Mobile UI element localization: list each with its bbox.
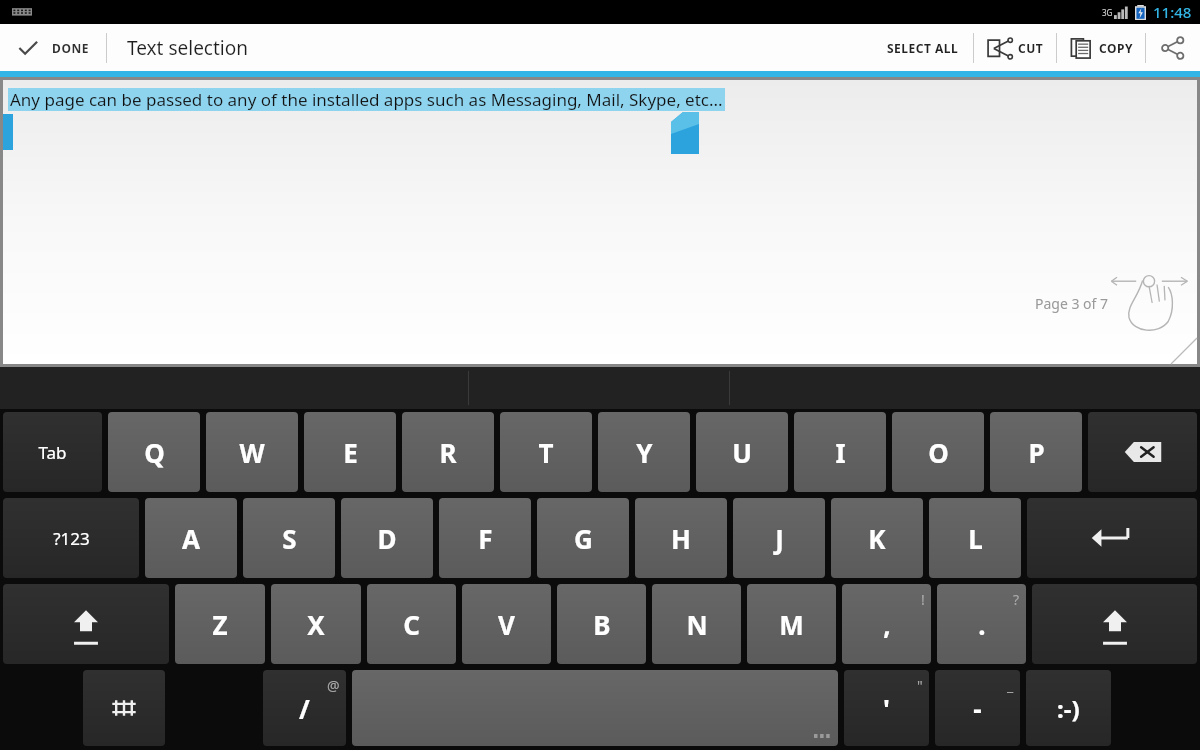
staticText: J (775, 521, 784, 556)
button[interactable]: Q (108, 412, 200, 492)
button[interactable]: I (794, 412, 886, 492)
staticText: W (239, 435, 265, 470)
button[interactable]: . (937, 584, 1026, 664)
button[interactable]: Tab (3, 412, 102, 492)
button[interactable]: T (500, 412, 592, 492)
button[interactable]: Backspace (1088, 412, 1197, 492)
staticText: K (868, 521, 886, 556)
staticText: / (299, 691, 310, 726)
staticText: DONE (52, 40, 90, 56)
button[interactable]: smiley (1026, 670, 1111, 746)
staticText: ' (883, 691, 890, 726)
staticText: - (973, 691, 982, 726)
staticText: D (377, 521, 397, 556)
button[interactable]: Shift (1032, 584, 1197, 664)
staticText: CUT (1018, 40, 1044, 56)
button[interactable]: K (831, 498, 923, 578)
button[interactable]: Keyboard settings (83, 670, 165, 746)
button[interactable]: Share (1146, 25, 1200, 71)
button[interactable]: , (842, 584, 931, 664)
staticText: ?123 (53, 527, 90, 550)
staticText: A (182, 521, 200, 556)
staticText: Y (636, 435, 653, 470)
button[interactable]: V (462, 584, 551, 664)
staticText: " (917, 676, 923, 695)
staticText: @ (327, 676, 340, 695)
button[interactable]: COPY (1057, 28, 1145, 68)
staticText: L (968, 521, 983, 556)
staticText: Tab (38, 441, 67, 464)
staticText: O (928, 435, 949, 470)
staticText: R (439, 435, 457, 470)
button[interactable]: S (243, 498, 335, 578)
button[interactable]: B (557, 584, 646, 664)
staticText: V (498, 607, 515, 642)
staticText: H (671, 521, 691, 556)
staticText: 11:48 (1153, 2, 1192, 22)
staticText: B (593, 607, 611, 642)
button[interactable]: / (263, 670, 346, 746)
button[interactable]: G (537, 498, 629, 578)
staticText: 3G (1102, 7, 1113, 18)
staticText: F (478, 521, 493, 556)
button[interactable]: P (990, 412, 1082, 492)
button[interactable]: L (929, 498, 1021, 578)
button[interactable]: E (304, 412, 396, 492)
button[interactable]: C (367, 584, 456, 664)
staticText: Z (212, 607, 228, 642)
button[interactable]: H (635, 498, 727, 578)
button[interactable]: F (439, 498, 531, 578)
staticText: , (883, 607, 891, 642)
staticText: G (574, 521, 593, 556)
staticText: U (732, 435, 752, 470)
button[interactable]: R (402, 412, 494, 492)
button[interactable]: CUT (974, 27, 1056, 69)
staticText: Any page can be passed to any of the ins… (10, 88, 723, 111)
button[interactable]: Space (352, 670, 838, 746)
button[interactable]: ?123 (3, 498, 139, 578)
button[interactable]: X (271, 584, 361, 664)
staticText: Q (144, 435, 165, 470)
button[interactable]: DONE (0, 26, 106, 70)
staticText: S (282, 521, 297, 556)
staticText: Text selection (127, 35, 248, 61)
staticText: I (835, 435, 846, 470)
staticText: :-) (1057, 692, 1080, 725)
staticText: P (1028, 435, 1045, 470)
button[interactable]: J (733, 498, 825, 578)
staticText: M (779, 607, 804, 642)
staticText: SELECT ALL (887, 40, 959, 56)
button[interactable]: W (206, 412, 298, 492)
staticText: N (686, 607, 708, 642)
button[interactable]: O (892, 412, 984, 492)
button[interactable]: Z (175, 584, 265, 664)
staticText: . (978, 607, 986, 642)
staticText: _ (1007, 676, 1014, 695)
button[interactable]: SELECT ALL (873, 28, 973, 68)
button[interactable]: ' (844, 670, 929, 746)
staticText: T (538, 435, 554, 470)
staticText: C (403, 607, 420, 642)
button[interactable]: - (935, 670, 1020, 746)
button[interactable]: Shift (3, 584, 169, 664)
button[interactable]: Y (598, 412, 690, 492)
staticText: E (343, 435, 358, 470)
staticText: COPY (1099, 40, 1133, 56)
button[interactable]: A (145, 498, 237, 578)
button[interactable]: Enter (1027, 498, 1197, 578)
staticText: X (307, 607, 325, 642)
button[interactable]: M (747, 584, 836, 664)
button[interactable]: U (696, 412, 788, 492)
staticText: ! (921, 590, 925, 609)
staticText: Page 3 of 7 (1035, 294, 1109, 313)
button[interactable]: N (652, 584, 741, 664)
button[interactable]: D (341, 498, 433, 578)
staticText: ? (1013, 590, 1020, 609)
